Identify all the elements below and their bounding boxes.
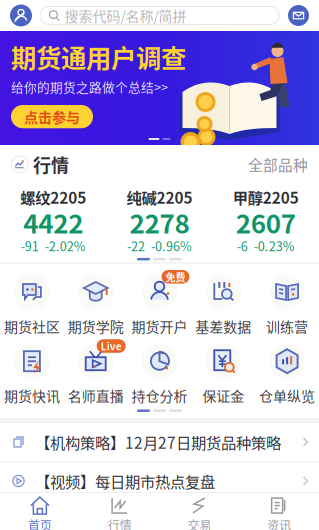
staticText: 期货社区 — [4, 318, 60, 334]
button[interactable]: 个人中心 — [0, 0, 40, 31]
button[interactable]: 消息 — [279, 0, 319, 31]
button[interactable]: 搜索 — [40, 6, 279, 24]
button[interactable]: 交易 — [159, 490, 239, 530]
button[interactable]: 行情 — [11, 154, 69, 175]
button[interactable]: 首页 — [0, 490, 80, 530]
button[interactable]: 保证金 — [191, 342, 255, 403]
button[interactable]: 免费 — [128, 273, 191, 334]
button[interactable]: 仓单纵览 — [255, 342, 319, 403]
staticText: 仓单纵览 — [259, 387, 315, 403]
staticText: -6 — [237, 239, 248, 253]
staticText: 交易 — [187, 518, 211, 530]
staticText: 基差数据 — [195, 318, 251, 334]
button[interactable]: 纯碱2205 — [106, 189, 213, 253]
staticText: 纯碱2205 — [126, 189, 192, 206]
button[interactable]: 持仓分析 — [128, 342, 191, 403]
staticText: -0.23% — [254, 239, 295, 253]
button[interactable]: 资讯 — [239, 490, 319, 530]
staticText: -0.96% — [151, 239, 192, 253]
staticText: 首页 — [28, 518, 52, 530]
staticText: 期货开户 — [131, 318, 187, 334]
staticText: -91 — [21, 239, 39, 253]
button[interactable]: 基差数据 — [191, 273, 255, 334]
staticText: 螺纹2205 — [20, 189, 86, 206]
staticText: -2.02% — [45, 239, 86, 253]
button[interactable]: 【视频】每日期市热点复盘 — [0, 462, 319, 501]
staticText: 【视频】每日期市热点复盘 — [35, 472, 215, 490]
staticText: 资讯 — [267, 518, 291, 530]
staticText: 搜索代码/名称/简拼 — [64, 7, 186, 24]
button[interactable]: 期货社区 — [0, 273, 64, 334]
staticText: 免费 — [165, 271, 185, 283]
staticText: 持仓分析 — [131, 387, 187, 403]
button[interactable]: Live — [64, 342, 128, 403]
staticText: -22 — [127, 239, 145, 253]
staticText: 全部品种 — [248, 156, 308, 173]
button[interactable]: 期货快讯 — [0, 342, 64, 403]
button[interactable]: 螺纹2205 — [0, 189, 106, 253]
staticText: 甲醇2205 — [233, 189, 299, 206]
staticText: 期货学院 — [68, 318, 124, 334]
staticText: 【机构策略】12月27日期货品种策略 — [35, 433, 281, 451]
button[interactable]: 训练营 — [255, 273, 319, 334]
staticText: 期货快讯 — [4, 387, 60, 403]
button[interactable]: 行情 — [80, 490, 160, 530]
staticText: 期货通用户调查 — [11, 42, 186, 71]
staticText: Live — [101, 340, 122, 352]
staticText: 行情 — [108, 518, 132, 530]
staticText: 名师直播 — [68, 387, 124, 403]
staticText: 给你的期货之路做个总结>> — [11, 79, 168, 94]
button[interactable]: 期货通用户调查 点击参与 — [0, 31, 319, 145]
staticText: 2607 — [236, 208, 296, 236]
button[interactable]: 【机构策略】12月27日期货品种策略 — [0, 423, 319, 462]
staticText: 保证金 — [202, 387, 244, 403]
staticText: 4422 — [23, 208, 83, 236]
staticText: 训练营 — [266, 318, 308, 334]
button[interactable]: 期货学院 — [64, 273, 128, 334]
staticText: 行情 — [33, 154, 69, 175]
staticText: 点击参与 — [24, 108, 80, 125]
button[interactable]: 甲醇2205 — [213, 189, 319, 253]
staticText: 2278 — [129, 208, 189, 236]
button[interactable]: 全部品种 — [248, 156, 308, 173]
